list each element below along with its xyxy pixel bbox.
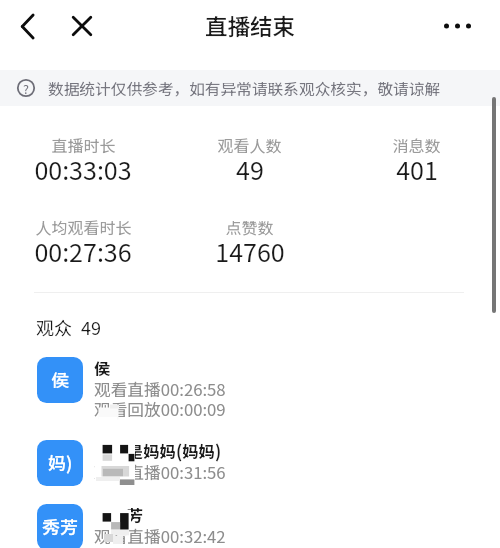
staticText: 401	[396, 151, 438, 187]
staticText: 观看直播00:32:42	[94, 524, 226, 548]
staticText: ?	[23, 79, 29, 97]
staticText: 14760	[215, 233, 285, 269]
staticText: 妈)	[48, 449, 73, 475]
staticText: 侯	[94, 356, 111, 380]
staticText: 点赞数	[225, 215, 274, 238]
staticText: 00:27:36	[34, 233, 132, 269]
staticText: 秀芳	[42, 513, 78, 539]
staticText: 观看直播00:26:58	[94, 377, 226, 401]
staticText: 消息数	[392, 133, 441, 156]
staticText: 人均观看时长	[35, 215, 132, 238]
staticText: 数据统计仅供参考，如有异常请联系观众核实，敬请谅解	[48, 77, 441, 100]
staticText: 49	[236, 151, 264, 187]
button[interactable]: Close	[64, 8, 100, 44]
staticText: 观众	[36, 314, 72, 340]
staticText: 芳	[94, 503, 144, 527]
button[interactable]: 妈)	[0, 440, 500, 502]
staticText: 观看人数	[217, 133, 282, 156]
button[interactable]: More options	[437, 6, 477, 46]
staticText: 直播时长	[51, 133, 116, 156]
button[interactable]: 秀芳	[0, 504, 500, 548]
staticText: 是妈妈(妈妈)	[94, 439, 222, 463]
staticText: 00:33:03	[34, 151, 132, 187]
staticText: 直播结束	[205, 9, 296, 42]
staticText: 观看回放00:00:09	[94, 397, 226, 421]
staticText: 观看直播00:31:56	[94, 460, 226, 484]
staticText: 侯	[51, 366, 69, 392]
button[interactable]: 侯	[0, 357, 500, 440]
button[interactable]: Back	[10, 8, 46, 44]
staticText: 49	[81, 314, 101, 340]
